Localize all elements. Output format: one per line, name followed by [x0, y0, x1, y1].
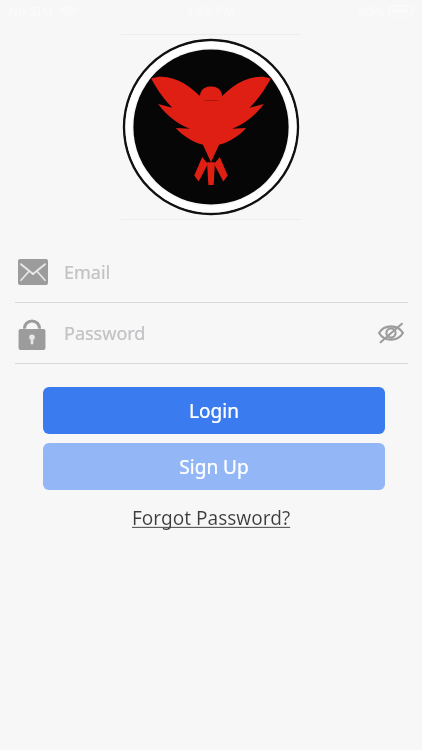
staticText: Sign Up	[179, 454, 249, 480]
staticText: Login	[189, 398, 239, 424]
button[interactable]: Email	[0, 242, 422, 302]
button[interactable]: Sign Up	[43, 443, 385, 490]
button[interactable]: Forgot Password?	[124, 501, 299, 535]
staticText: Email	[64, 260, 111, 285]
staticText: Forgot Password?	[132, 505, 291, 531]
button[interactable]: Login	[43, 387, 385, 434]
staticText: Password	[64, 321, 146, 346]
button[interactable]: Show password	[374, 316, 408, 350]
button[interactable]: Password	[0, 303, 422, 363]
